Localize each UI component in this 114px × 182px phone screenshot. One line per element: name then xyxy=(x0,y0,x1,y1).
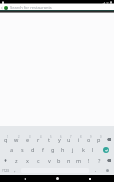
staticText: a xyxy=(10,146,14,153)
staticText: g xyxy=(51,146,55,153)
staticText: 3 xyxy=(29,135,31,139)
staticText: w xyxy=(14,136,19,143)
staticText: ! xyxy=(88,157,90,164)
button[interactable]: 5 xyxy=(44,133,54,144)
button[interactable]: Shift xyxy=(0,155,11,166)
button[interactable]: a xyxy=(6,144,17,155)
staticText: ? xyxy=(98,157,101,164)
staticText: 2 xyxy=(18,135,20,139)
button[interactable]: s xyxy=(17,144,28,155)
button[interactable]: Recents xyxy=(82,175,98,182)
staticText: 9 xyxy=(90,135,92,139)
staticText: p xyxy=(97,136,101,143)
button[interactable]: l xyxy=(88,144,98,155)
staticText: l xyxy=(92,146,94,153)
staticText: j xyxy=(72,146,74,153)
button[interactable]: 4 xyxy=(33,133,44,144)
button[interactable]: z xyxy=(11,155,22,166)
button[interactable]: 0 xyxy=(94,133,104,144)
staticText: h xyxy=(61,146,65,153)
staticText: 8 xyxy=(80,135,82,139)
staticText: f xyxy=(42,146,44,153)
staticText: y xyxy=(58,136,61,143)
button[interactable]: . xyxy=(90,166,101,175)
staticText: k xyxy=(82,146,85,153)
button[interactable]: g xyxy=(48,144,58,155)
button[interactable]: c xyxy=(33,155,44,166)
button[interactable]: Search for restaurants xyxy=(0,4,114,10)
button[interactable]: 1 xyxy=(0,133,11,144)
button[interactable]: Back xyxy=(17,175,33,182)
staticText: 7 xyxy=(70,135,72,139)
staticText: r xyxy=(37,136,40,143)
staticText: u xyxy=(67,136,71,143)
button[interactable]: Home xyxy=(49,175,65,182)
button[interactable]: Backspace xyxy=(104,155,114,166)
staticText: e xyxy=(26,136,30,143)
staticText: x xyxy=(26,157,29,164)
button[interactable]: 7 xyxy=(64,133,74,144)
button[interactable]: x xyxy=(22,155,33,166)
staticText: o xyxy=(87,136,91,143)
staticText: 1 xyxy=(7,135,9,139)
staticText: q xyxy=(4,136,8,143)
button[interactable]: ? xyxy=(94,155,104,166)
button[interactable]: , xyxy=(10,166,20,175)
staticText: c xyxy=(37,157,40,164)
staticText: n xyxy=(67,157,71,164)
staticText: d xyxy=(31,146,35,153)
button[interactable]: m xyxy=(74,155,84,166)
staticText: . xyxy=(95,167,97,174)
button[interactable]: Backspace xyxy=(104,133,114,144)
button[interactable]: f xyxy=(38,144,48,155)
button[interactable]: ?123 xyxy=(0,166,10,175)
button[interactable]: 9 xyxy=(84,133,94,144)
staticText: z xyxy=(15,157,18,164)
button[interactable]: b xyxy=(54,155,64,166)
staticText: i xyxy=(78,136,80,143)
staticText: 0 xyxy=(100,135,102,139)
button[interactable]: h xyxy=(58,144,68,155)
button[interactable]: v xyxy=(44,155,54,166)
staticText: 6 xyxy=(60,135,62,139)
staticText: Search for restaurants xyxy=(10,5,52,10)
button[interactable]: ! xyxy=(84,155,94,166)
staticText: 4 xyxy=(40,135,42,139)
staticText: b xyxy=(57,157,61,164)
button[interactable]: 8 xyxy=(74,133,84,144)
button[interactable]: d xyxy=(28,144,38,155)
staticText: 5 xyxy=(50,135,52,139)
staticText: , xyxy=(14,167,16,174)
staticText: s xyxy=(21,146,24,153)
staticText: m xyxy=(76,157,82,164)
staticText: t xyxy=(48,136,50,143)
button[interactable]: 2 xyxy=(11,133,22,144)
button[interactable]: Emoji xyxy=(101,166,114,175)
staticText: v xyxy=(48,157,51,164)
staticText: ?123 xyxy=(2,169,9,173)
button[interactable]: k xyxy=(78,144,88,155)
button[interactable]: j xyxy=(68,144,78,155)
button[interactable]: Enter xyxy=(98,144,114,155)
button[interactable]: 3 xyxy=(22,133,33,144)
button[interactable]: 6 xyxy=(54,133,64,144)
button[interactable]: n xyxy=(64,155,74,166)
